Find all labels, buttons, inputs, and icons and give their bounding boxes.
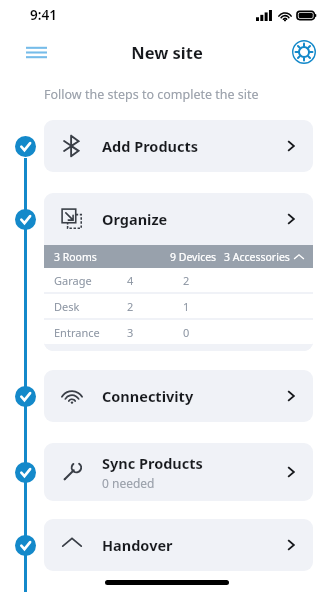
staticText: 3 Accessories — [224, 250, 290, 264]
staticText: Add Products — [102, 136, 199, 156]
button[interactable]: Handover — [44, 519, 313, 571]
staticText: 2 — [183, 273, 190, 288]
staticText: 0 needed — [102, 475, 155, 491]
staticText: Entrance — [54, 325, 127, 340]
staticText: Follow the steps to complete the site — [44, 86, 259, 103]
staticText: 9:41 — [30, 6, 57, 24]
staticText: 3 — [127, 325, 183, 340]
staticText: 9 Devices — [170, 250, 217, 264]
button[interactable]: Connectivity — [44, 370, 313, 422]
button[interactable]: Bluetooth — [44, 120, 313, 172]
staticText: 0 — [183, 325, 190, 340]
button[interactable]: Menu — [19, 35, 53, 69]
staticText: 4 — [127, 273, 183, 288]
staticText: New site — [131, 41, 203, 63]
staticText: Garage — [54, 273, 127, 288]
other: Sync Products — [61, 461, 83, 483]
other: Collapse — [294, 252, 304, 262]
staticText: Sync Products — [102, 453, 203, 473]
staticText: Desk — [54, 299, 127, 314]
staticText: Organize — [102, 209, 168, 229]
button[interactable]: Sync Products — [44, 443, 313, 501]
other: Connectivity — [61, 385, 83, 407]
button[interactable]: Garage — [44, 268, 313, 292]
button[interactable]: Entrance — [44, 320, 313, 344]
staticText: 1 — [183, 299, 190, 314]
button[interactable]: Desk — [44, 294, 313, 318]
other: Handover — [61, 534, 83, 556]
button[interactable]: Organize — [44, 193, 313, 351]
staticText: Handover — [102, 535, 173, 555]
staticText: 3 Rooms — [54, 250, 170, 264]
other: Bluetooth — [61, 135, 83, 157]
button[interactable]: 3 Rooms — [44, 245, 313, 268]
staticText: Connectivity — [102, 386, 194, 406]
other: Organize — [61, 208, 83, 230]
button[interactable]: Settings — [288, 36, 320, 68]
staticText: 2 — [127, 299, 183, 314]
